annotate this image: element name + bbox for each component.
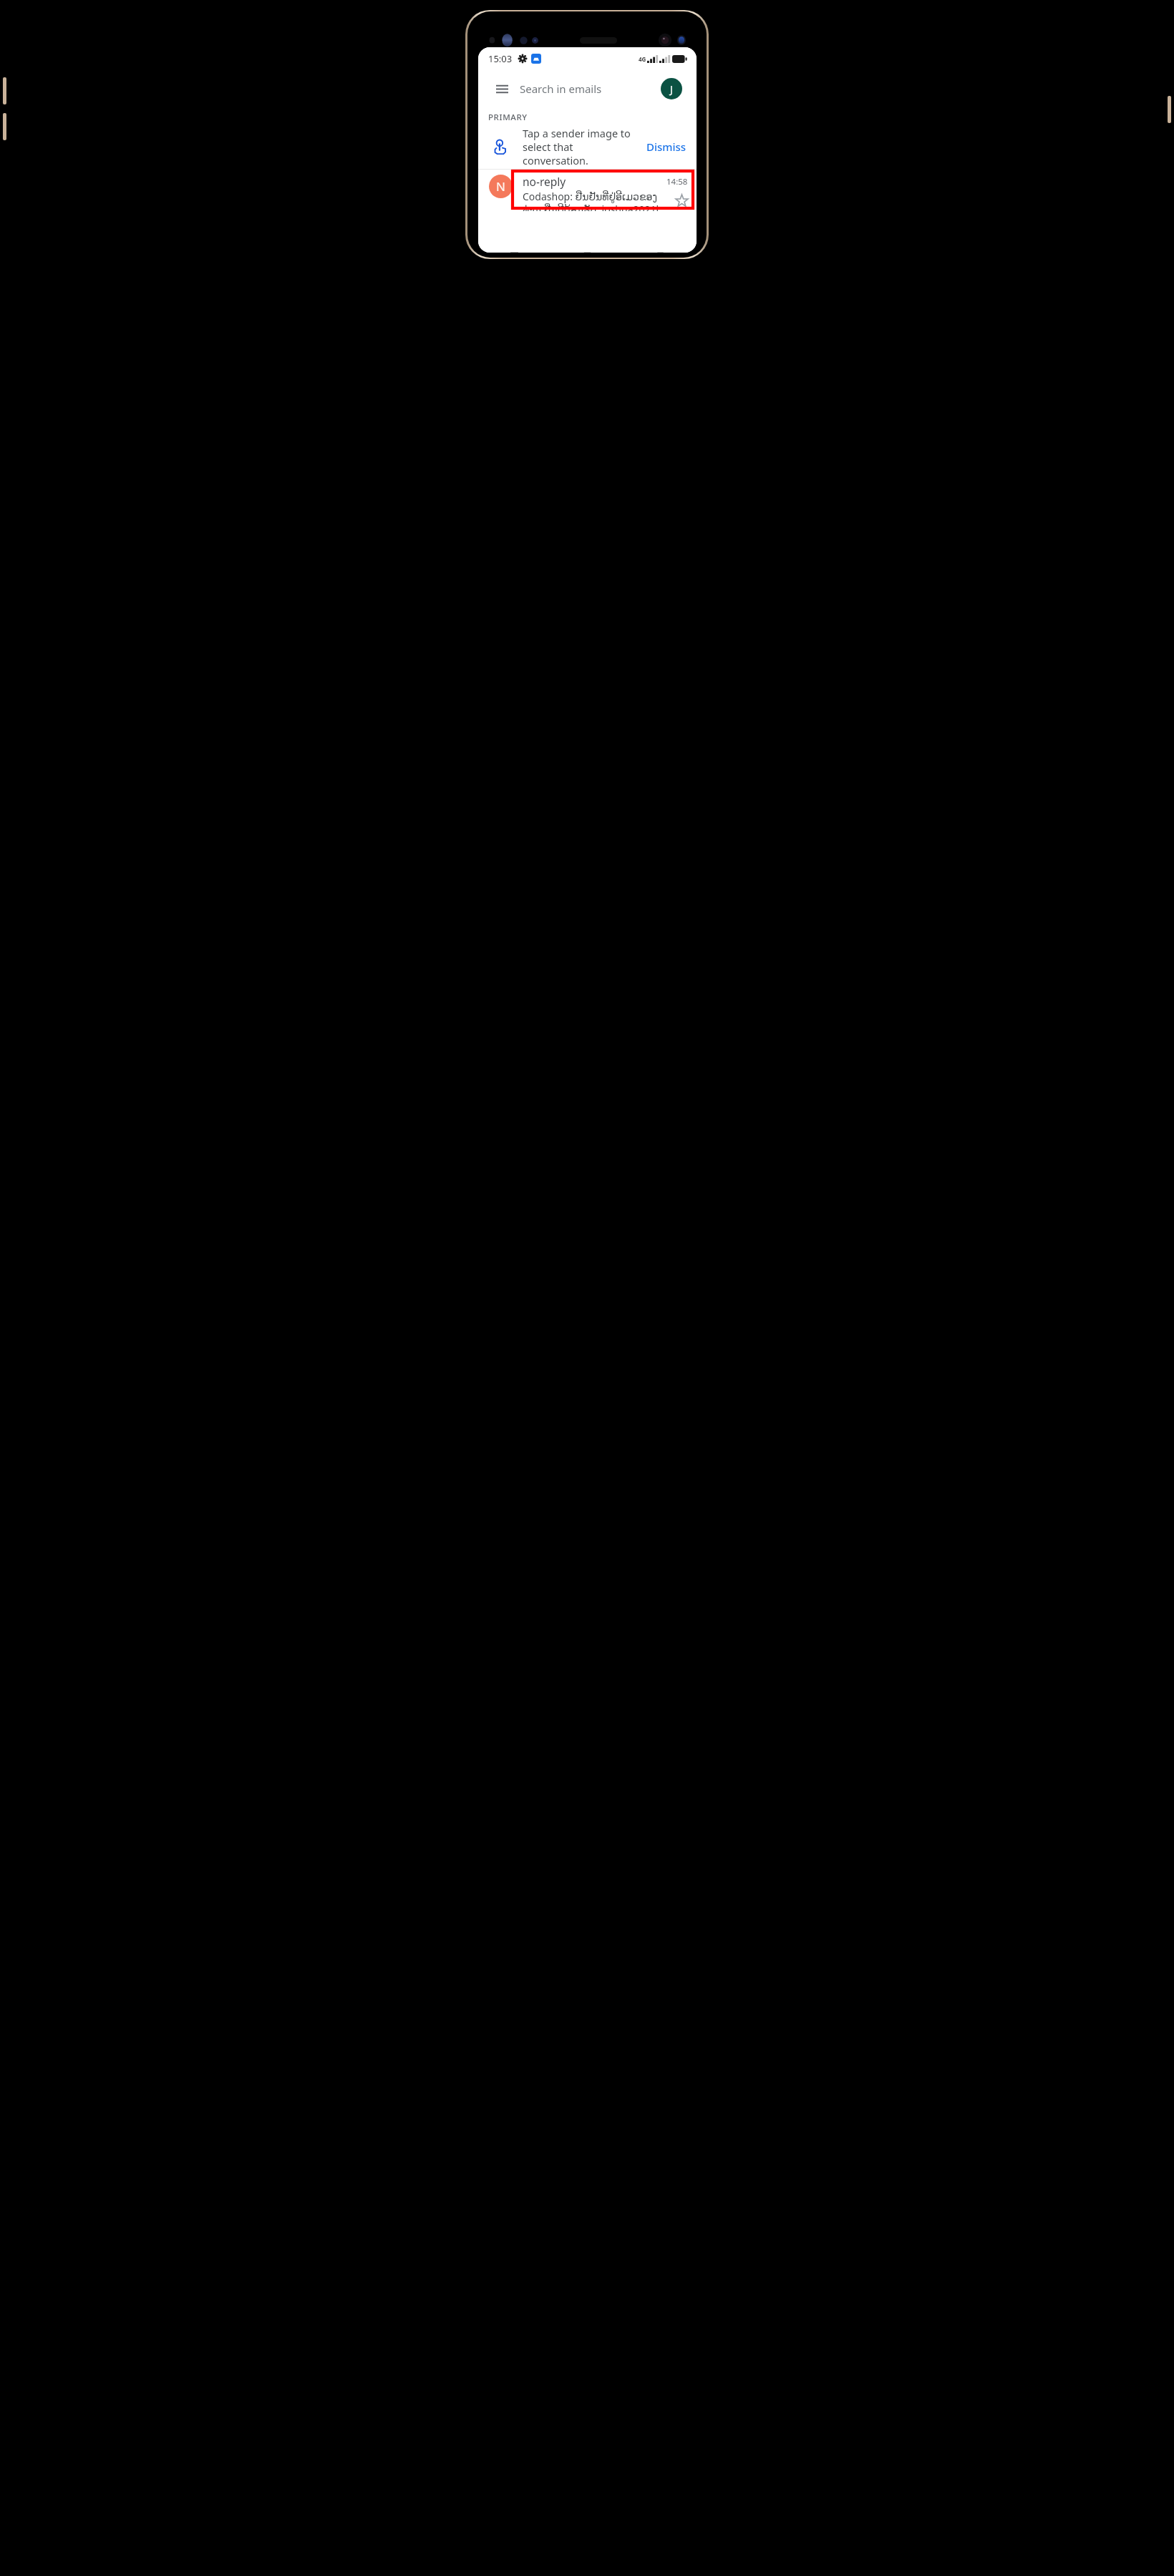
staticText: Codashop: ຢືນຢັນທີ່ຢູ່ອີເມວຂອງທ່ານ ຢືນດີ…: [523, 190, 672, 211]
staticText: 15:03: [488, 52, 513, 65]
staticText: Dismiss: [646, 140, 687, 154]
staticText: J: [670, 82, 673, 96]
staticText: 14:58: [666, 176, 688, 187]
button[interactable]: Tap a sender image to select that conver…: [478, 125, 697, 169]
staticText: Search in emails: [520, 82, 602, 96]
button[interactable]: Account: [661, 78, 682, 99]
staticText: 4G: [639, 55, 646, 63]
button[interactable]: Dismiss: [645, 135, 688, 158]
staticText: no-reply: [523, 174, 666, 189]
staticText: PRIMARY: [488, 112, 528, 123]
button[interactable]: Open navigation menu: [493, 79, 511, 98]
staticText: Tap a sender image to select that conver…: [523, 126, 639, 167]
staticText: N: [496, 178, 505, 195]
button[interactable]: Star conversation: [674, 192, 689, 208]
button[interactable]: Sender avatar: [478, 170, 697, 253]
button[interactable]: Sender avatar: [489, 175, 513, 198]
button[interactable]: Open navigation menu: [485, 74, 690, 104]
